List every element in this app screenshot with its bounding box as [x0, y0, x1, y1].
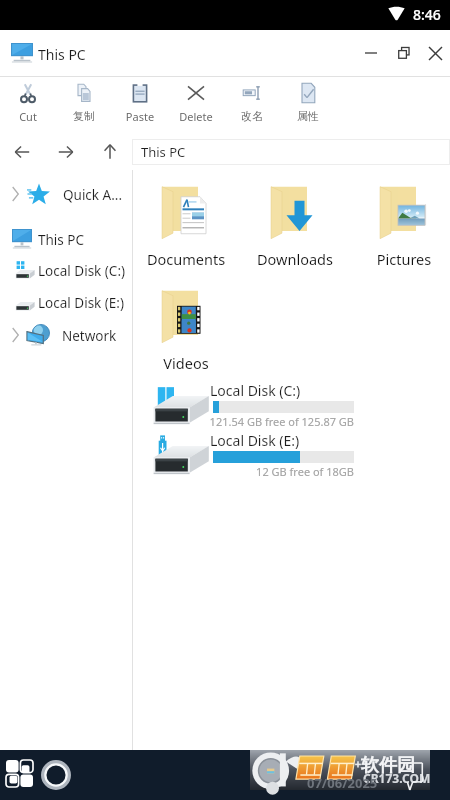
button[interactable]: Restore [386, 34, 422, 72]
button[interactable]: Downloads [251, 185, 339, 273]
button[interactable]: Pictures [360, 185, 448, 273]
staticText: Pictures [360, 249, 448, 269]
staticText: This PC [38, 231, 85, 249]
staticText: Downloads [251, 249, 339, 269]
staticText: This PC [141, 143, 186, 161]
staticText: Cut [0, 109, 56, 124]
staticText: 属性 [280, 109, 336, 123]
staticText: Videos [142, 353, 230, 373]
button[interactable]: Local Disk (E:) [0, 286, 132, 318]
staticText: Quick A... [63, 186, 123, 204]
staticText: Network [62, 327, 117, 345]
staticText: Documents [142, 249, 230, 269]
staticText: Local Disk (C:) [38, 262, 126, 280]
button[interactable]: Local Disk (E:) [146, 430, 361, 480]
button[interactable]: Start [1, 756, 41, 794]
button[interactable]: Up [88, 133, 132, 170]
staticText: CR173.COM [363, 770, 431, 786]
staticText: Delete [168, 109, 224, 124]
staticText: 8:46 [413, 5, 441, 24]
button[interactable]: Minimize [353, 34, 389, 72]
button[interactable]: 属性 [280, 77, 336, 133]
button[interactable]: This PC [132, 139, 450, 165]
button[interactable]: Documents [142, 185, 230, 273]
button[interactable]: Quick A... [0, 178, 132, 210]
button[interactable]: Delete [168, 77, 224, 133]
button[interactable]: Cortana [37, 756, 75, 794]
button[interactable]: 改名 [224, 77, 280, 133]
button[interactable]: Cut [0, 77, 56, 133]
button[interactable]: This PC [0, 223, 132, 255]
staticText: 12 GB free of 18GB [209, 464, 354, 479]
button[interactable]: Videos [142, 289, 230, 377]
button[interactable]: Local Disk (C:) [0, 254, 132, 286]
button[interactable]: 复制 [56, 77, 112, 133]
staticText: This PC [38, 45, 86, 64]
staticText: Local Disk (E:) [38, 294, 125, 312]
staticText: Local Disk (E:) [210, 431, 300, 450]
staticText: 121.54 GB free of 125.87 GB [209, 414, 354, 429]
button[interactable]: Forward [44, 133, 88, 170]
staticText: 改名 [224, 109, 280, 123]
staticText: Paste [112, 109, 168, 124]
button[interactable]: Close [417, 34, 450, 72]
staticText: Local Disk (C:) [210, 381, 301, 400]
staticText: 软件园 [361, 754, 415, 777]
button[interactable]: Back [0, 133, 44, 170]
staticText: 07/06/2025 [307, 774, 378, 792]
staticText: 复制 [56, 109, 112, 123]
button[interactable]: Paste [112, 77, 168, 133]
button[interactable]: Network [0, 319, 132, 351]
button[interactable]: Local Disk (C:) [146, 380, 361, 430]
